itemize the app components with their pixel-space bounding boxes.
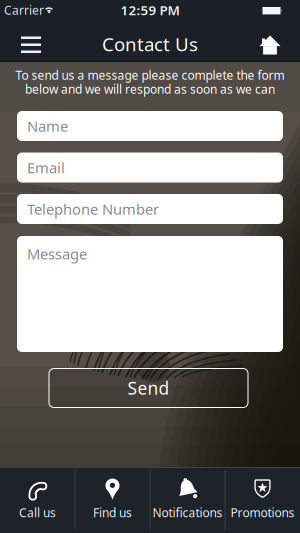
button[interactable]: Telephone Number	[17, 194, 283, 224]
button[interactable]: Message	[17, 236, 283, 352]
staticText: To send us a message please complete the…	[15, 67, 284, 83]
staticText: Notifications	[152, 504, 222, 520]
staticText: Contact Us	[102, 32, 198, 56]
staticText: 12:59 PM	[120, 1, 179, 19]
staticText: Promotions	[230, 504, 294, 520]
staticText: Name	[27, 116, 68, 136]
button[interactable]: Find us	[75, 470, 150, 528]
button[interactable]: Send	[48, 368, 248, 408]
staticText: below and we will respond as soon as we …	[25, 81, 275, 97]
staticText: Carrier	[4, 2, 44, 18]
staticText: Email	[27, 158, 65, 177]
staticText: Send	[127, 376, 169, 399]
button[interactable]: Email	[17, 152, 283, 182]
staticText: Call us	[19, 504, 56, 520]
button[interactable]: Name	[17, 111, 283, 141]
button[interactable]: Promotions	[225, 470, 300, 528]
button[interactable]: Notifications	[150, 470, 225, 528]
button[interactable]: Menu	[11, 25, 51, 65]
staticText: Telephone Number	[27, 199, 159, 219]
button[interactable]: Home	[250, 25, 290, 65]
staticText: Find us	[93, 504, 132, 520]
button[interactable]: Call us	[0, 470, 75, 528]
staticText: Message	[27, 244, 87, 263]
